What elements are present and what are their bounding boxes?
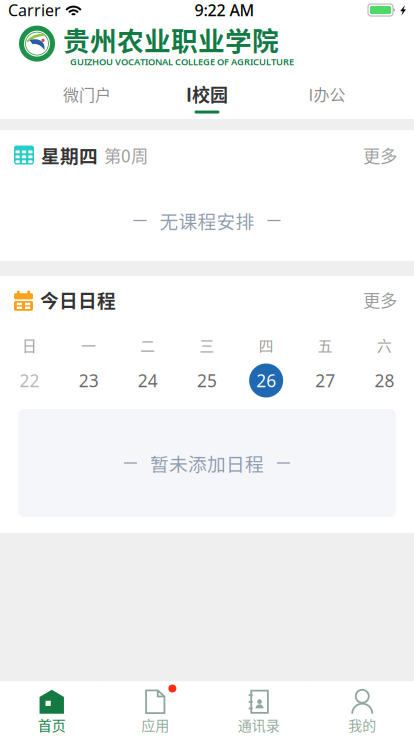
staticText: I校园 [186, 81, 228, 107]
button[interactable]: 更多 [349, 134, 397, 176]
staticText: 更多 [363, 142, 397, 168]
staticText: I办公 [308, 82, 345, 106]
staticText: 首页 [38, 715, 66, 735]
staticText: 28 [374, 369, 394, 392]
staticText: 星期四 [41, 141, 98, 168]
staticText: 无课程安排 [159, 207, 254, 234]
button[interactable]: 通讯录 [207, 681, 310, 736]
button[interactable]: 微门户 [27, 75, 147, 119]
button[interactable]: I校园 [147, 75, 267, 119]
button[interactable]: 五 [296, 323, 355, 393]
staticText: 24 [138, 369, 158, 392]
button[interactable]: 二 [118, 323, 177, 393]
staticText: 一 [81, 334, 96, 356]
staticText: 微门户 [63, 82, 111, 106]
staticText: 25 [197, 369, 217, 392]
staticText: 我的 [348, 715, 376, 735]
staticText: 第0周 [104, 142, 148, 168]
button[interactable]: 一 [59, 323, 118, 393]
button[interactable]: 更多 [349, 279, 397, 320]
button[interactable]: 应用 [103, 681, 207, 736]
button[interactable]: 我的 [310, 681, 414, 736]
staticText: GUIZHOU VOCATIONAL COLLEGE OF AGRICULTUR… [70, 55, 294, 68]
staticText: 六 [377, 334, 392, 356]
button[interactable]: I办公 [267, 75, 387, 119]
staticText: 贵州农业职业学院 [63, 20, 279, 59]
button[interactable]: 三 [177, 323, 236, 393]
staticText: 22 [20, 369, 40, 392]
staticText: 三 [199, 334, 214, 356]
staticText: 二 [140, 334, 155, 356]
button[interactable]: 日 [0, 323, 59, 393]
staticText: 通讯录 [238, 715, 280, 735]
staticText: 日 [22, 334, 37, 356]
staticText: 27 [315, 369, 335, 392]
staticText: 四 [259, 334, 274, 356]
staticText: 五 [318, 334, 333, 356]
staticText: 9:22 AM [194, 0, 254, 21]
staticText: 26 [256, 369, 276, 392]
staticText: 今日日程 [40, 286, 116, 313]
staticText: 更多 [363, 287, 397, 312]
staticText: Carrier [8, 0, 61, 21]
staticText: 暂未添加日程 [150, 449, 264, 476]
button[interactable]: 六 [355, 323, 414, 393]
staticText: 23 [79, 369, 99, 392]
staticText: 应用 [141, 715, 169, 735]
button[interactable]: 四 [237, 323, 296, 393]
button[interactable]: 首页 [0, 681, 103, 736]
